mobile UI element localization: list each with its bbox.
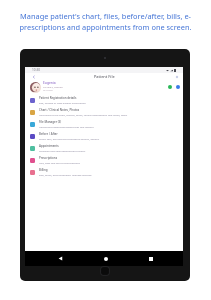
staticText: Add, view and print e-prescriptions — [39, 161, 80, 164]
staticText: Photo sets, pre and post procedure photo… — [39, 137, 100, 140]
staticText: Patient File — [94, 74, 115, 79]
staticText: Bills, plans, price estimates. Manage in… — [39, 173, 92, 176]
button[interactable]: Eugenia — [25, 80, 183, 94]
button[interactable]: Appointments — [25, 142, 183, 154]
button[interactable]: Billing — [25, 166, 183, 178]
button[interactable]: WhatsApp — [168, 85, 172, 89]
button[interactable]: Home — [104, 257, 108, 261]
staticText: Manage patient's chart, files, before/af… — [14, 11, 197, 32]
button[interactable]: Patient Registration details — [25, 94, 183, 106]
button[interactable]: Back — [30, 73, 37, 80]
staticText: Schedule and view appointment history — [39, 149, 86, 152]
staticText: Billing — [39, 168, 48, 172]
staticText: 10:30 — [32, 68, 41, 72]
staticText: Upload and download patient files and re… — [39, 125, 94, 128]
button[interactable]: Message — [176, 85, 180, 89]
staticText: Edit, update or view patient information — [39, 101, 86, 104]
staticText: Appointments — [39, 144, 59, 148]
staticText: Add notes to the chart, photos, plans, c… — [39, 113, 128, 116]
staticText: Before / After — [39, 132, 58, 136]
staticText: ID 10428 — [43, 89, 53, 92]
button[interactable]: Back — [58, 256, 63, 261]
staticText: Eugenia — [43, 80, 56, 84]
button[interactable]: Before / After — [25, 130, 183, 142]
staticText: Prescriptions — [39, 156, 58, 160]
staticText: Chart / Clinical Notes, Photos — [39, 108, 80, 112]
staticText: Patient Registration details — [39, 96, 77, 100]
button[interactable]: Chart / Clinical Notes, Photos — [25, 106, 183, 118]
button[interactable]: Home button — [100, 266, 110, 276]
button[interactable]: More options — [173, 73, 181, 80]
staticText: File Manager (3) — [39, 120, 62, 124]
button[interactable]: File Manager (3) — [25, 118, 183, 130]
button[interactable]: Prescriptions — [25, 154, 183, 166]
staticText: 34 years, Female — [43, 85, 63, 88]
